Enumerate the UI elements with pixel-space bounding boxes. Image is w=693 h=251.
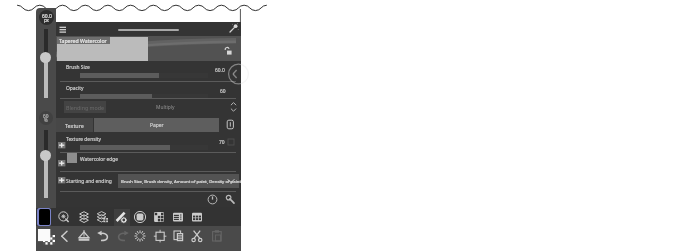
staticText: Tapered Watercolor — [59, 37, 107, 44]
staticText: % — [44, 117, 48, 123]
button[interactable]: Zoom — [57, 210, 71, 224]
button[interactable]: Frames — [190, 210, 204, 224]
button[interactable]: Texture options — [225, 119, 236, 130]
button[interactable]: Texture density — [80, 145, 208, 150]
staticText: Opacity — [66, 85, 84, 92]
button[interactable]: Foreground colour — [37, 208, 51, 226]
staticText: Paper — [150, 122, 164, 129]
staticText: 60.0 — [42, 13, 52, 20]
button[interactable]: Loading — [133, 229, 147, 243]
button[interactable]: Redo — [116, 229, 130, 243]
staticText: Starting and ending — [66, 178, 112, 185]
button[interactable]: Opacity — [40, 150, 51, 161]
button[interactable]: Background colour — [38, 229, 55, 246]
button[interactable]: Add parameter — [58, 142, 66, 149]
button[interactable]: Duplicate — [172, 229, 186, 243]
button[interactable]: Brush — [114, 210, 128, 224]
staticText: Multiply — [156, 104, 175, 111]
button[interactable]: Lock brush — [224, 46, 234, 56]
button[interactable]: Add parameter — [58, 160, 66, 167]
button[interactable]: Layer effects — [96, 210, 110, 224]
staticText: px — [44, 17, 49, 23]
staticText: Brush Size — [66, 64, 90, 71]
button[interactable]: Cut — [190, 229, 204, 243]
staticText: Texture — [65, 122, 84, 129]
staticText: Blending mode — [66, 104, 105, 111]
button[interactable]: Brush Size, Brush density, Amount of pai… — [118, 174, 239, 188]
button[interactable]: Layers — [77, 210, 91, 224]
staticText: 70 — [219, 139, 225, 146]
button[interactable]: Change blending mode — [229, 101, 238, 113]
button[interactable]: Save — [77, 229, 91, 243]
button[interactable]: Undo — [96, 229, 110, 243]
staticText: Watercolor edge — [80, 156, 118, 163]
button[interactable]: Back — [58, 229, 72, 243]
button[interactable]: Collapse panel — [228, 64, 241, 84]
button[interactable]: Add parameter — [58, 177, 66, 184]
button[interactable]: Transform — [153, 229, 167, 243]
button[interactable]: Brush editor — [228, 23, 239, 34]
button[interactable]: Opacity — [80, 94, 208, 99]
button[interactable]: Brush size — [40, 52, 51, 63]
button[interactable]: Filters — [171, 210, 185, 224]
staticText: Brush Size, Brush density, Amount of pai… — [121, 178, 241, 184]
staticText: 60.0 — [215, 67, 225, 74]
button[interactable]: Paste — [210, 229, 224, 243]
button[interactable]: Fill — [133, 210, 147, 224]
button[interactable]: Palette — [152, 210, 166, 224]
button[interactable]: Menu — [57, 24, 68, 34]
button[interactable]: Settings — [225, 194, 236, 205]
staticText: 60 — [43, 113, 49, 120]
button[interactable]: Paper — [94, 118, 219, 132]
staticText: Texture density — [66, 136, 102, 143]
staticText: 60 — [220, 88, 226, 95]
button[interactable]: History — [207, 194, 218, 205]
button[interactable]: Blending mode — [60, 100, 236, 114]
button[interactable]: Brush Size — [80, 73, 208, 78]
